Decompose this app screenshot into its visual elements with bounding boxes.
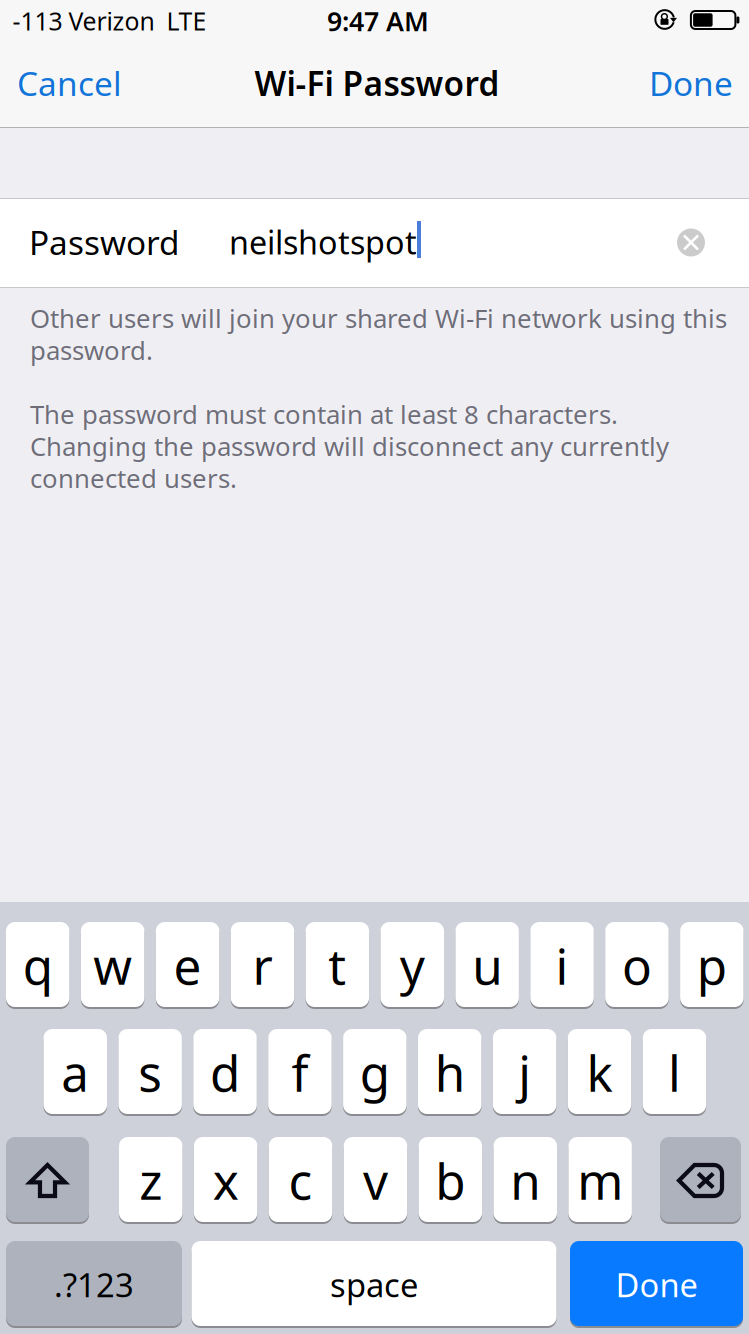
button[interactable]: t <box>306 922 369 1009</box>
button[interactable]: g <box>343 1029 407 1116</box>
staticText: z <box>139 1147 162 1214</box>
staticText: Wi-Fi Password <box>254 60 499 106</box>
staticText: Done <box>649 60 733 106</box>
button[interactable]: p <box>680 922 744 1009</box>
staticText: j <box>518 1039 531 1106</box>
button[interactable]: Cancel <box>1 40 154 126</box>
button[interactable]: c <box>269 1137 332 1224</box>
staticText: b <box>435 1147 465 1214</box>
button[interactable]: .?123 <box>6 1241 182 1328</box>
staticText: o <box>622 932 652 999</box>
staticText: Cancel <box>17 60 122 106</box>
staticText: x <box>213 1147 239 1214</box>
staticText: 9:47 AM <box>327 3 429 39</box>
button[interactable]: i <box>530 922 594 1009</box>
staticText: c <box>289 1147 313 1214</box>
staticText: r <box>252 932 272 999</box>
staticText: d <box>210 1039 240 1106</box>
button[interactable]: q <box>6 922 69 1009</box>
staticText: s <box>138 1039 162 1106</box>
staticText: Other users will join your shared Wi-Fi … <box>30 300 727 335</box>
staticText: q <box>23 932 53 999</box>
button[interactable]: r <box>231 922 294 1009</box>
button[interactable]: Done <box>613 40 749 126</box>
button[interactable]: y <box>380 922 444 1009</box>
button[interactable]: o <box>605 922 669 1009</box>
staticText: i <box>556 932 569 999</box>
staticText: e <box>174 932 202 999</box>
button[interactable]: Clear text <box>656 202 726 282</box>
staticText: u <box>472 932 502 999</box>
staticText: .?123 <box>54 1262 134 1307</box>
button[interactable]: e <box>156 922 219 1009</box>
button[interactable]: d <box>193 1029 257 1116</box>
staticText: m <box>577 1147 623 1214</box>
button[interactable]: l <box>643 1029 706 1116</box>
button[interactable]: h <box>418 1029 481 1116</box>
button[interactable]: z <box>119 1137 182 1224</box>
staticText: h <box>435 1039 465 1106</box>
staticText: y <box>400 932 425 999</box>
staticText: f <box>291 1039 308 1106</box>
button[interactable]: u <box>455 922 519 1009</box>
button[interactable]: Delete <box>660 1137 741 1224</box>
button[interactable]: x <box>194 1137 257 1224</box>
staticText: n <box>510 1147 540 1214</box>
button[interactable]: w <box>81 922 144 1009</box>
staticText: p <box>697 932 727 999</box>
staticText: -113 Verizon LTE <box>12 4 206 38</box>
button[interactable]: Shift <box>6 1137 89 1224</box>
button[interactable]: Done <box>570 1241 743 1328</box>
button[interactable]: a <box>43 1029 107 1116</box>
staticText: t <box>328 932 346 999</box>
staticText: v <box>363 1147 388 1214</box>
button[interactable]: m <box>568 1137 632 1224</box>
button[interactable]: j <box>493 1029 556 1116</box>
staticText: g <box>360 1039 390 1106</box>
button[interactable]: f <box>268 1029 332 1116</box>
staticText: space <box>330 1262 418 1307</box>
staticText: l <box>668 1039 681 1106</box>
button[interactable]: k <box>568 1029 631 1116</box>
button[interactable]: s <box>118 1029 182 1116</box>
staticText: Done <box>615 1262 697 1307</box>
staticText: connected users. <box>30 460 237 495</box>
staticText: k <box>587 1039 613 1106</box>
staticText: neilshotspot <box>229 220 417 264</box>
staticText: w <box>93 932 132 999</box>
staticText: The password must contain at least 8 cha… <box>30 396 618 431</box>
staticText: Password <box>29 219 180 265</box>
button[interactable]: n <box>493 1137 557 1224</box>
button[interactable]: b <box>419 1137 482 1224</box>
staticText: Changing the password will disconnect an… <box>30 428 669 463</box>
button[interactable]: space <box>191 1241 556 1328</box>
staticText: a <box>61 1039 89 1106</box>
staticText: password. <box>30 332 153 367</box>
button[interactable]: v <box>344 1137 407 1224</box>
